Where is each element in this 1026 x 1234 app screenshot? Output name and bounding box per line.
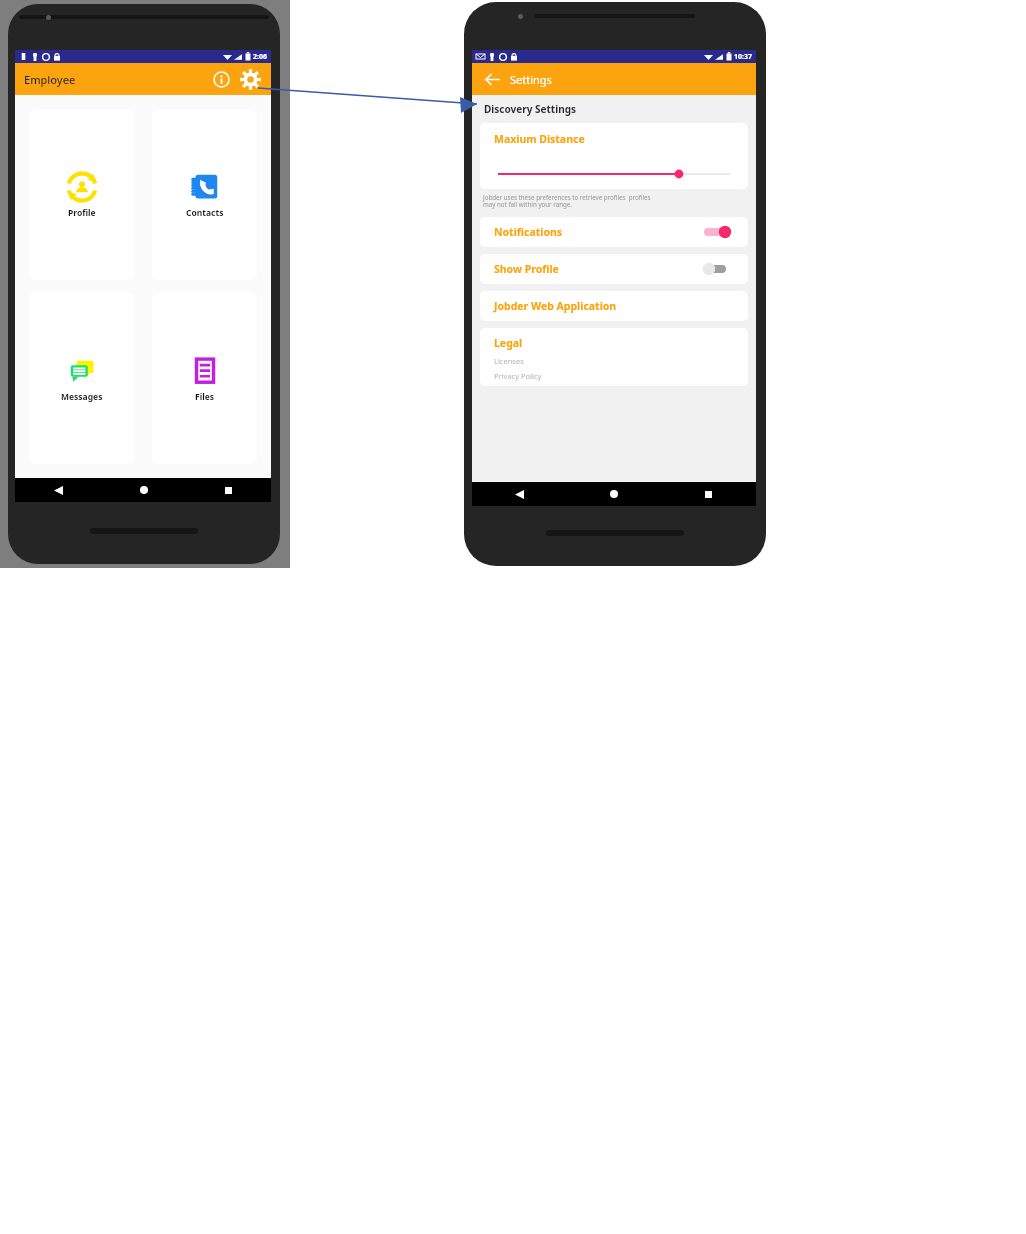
button[interactable]: Home bbox=[101, 478, 186, 502]
staticText: Files bbox=[195, 391, 215, 403]
button[interactable]: Jobder Web Application bbox=[480, 291, 748, 321]
staticText: Profile bbox=[68, 207, 96, 219]
staticText: Jobder uses these preferences to retriev… bbox=[483, 193, 651, 209]
button[interactable]: Recents bbox=[661, 482, 756, 506]
staticText: Settings bbox=[510, 72, 552, 87]
staticText: Notifications bbox=[494, 225, 563, 239]
staticText: 10:37 bbox=[734, 52, 752, 62]
staticText: Discovery Settings bbox=[484, 102, 576, 116]
staticText: Employee bbox=[24, 72, 76, 87]
button[interactable]: Toggle off bbox=[700, 261, 734, 277]
button[interactable]: Back bbox=[472, 482, 566, 506]
button[interactable]: Back bbox=[15, 478, 101, 502]
button[interactable]: Back bbox=[480, 67, 504, 91]
button[interactable]: Home bbox=[566, 482, 661, 506]
staticText: Jobder Web Application bbox=[494, 299, 617, 313]
staticText: Legal bbox=[494, 336, 523, 350]
button[interactable]: Toggle on bbox=[700, 224, 734, 240]
button[interactable]: Recents bbox=[186, 478, 271, 502]
button[interactable]: Info bbox=[209, 67, 233, 91]
staticText: Contacts bbox=[186, 207, 224, 219]
button[interactable]: Settings bbox=[237, 66, 263, 92]
button[interactable]: Contacts bbox=[152, 109, 257, 280]
button[interactable]: Notifications bbox=[480, 217, 748, 247]
button[interactable]: Files bbox=[152, 292, 257, 464]
button[interactable]: Show Profile bbox=[480, 254, 748, 284]
staticText: Maxium Distance bbox=[494, 132, 585, 146]
button[interactable]: Messages bbox=[29, 292, 134, 464]
staticText: Show Profile bbox=[494, 262, 559, 276]
button[interactable]: Profile bbox=[29, 109, 134, 280]
staticText: 2:06 bbox=[253, 52, 267, 62]
button[interactable]: Licenses bbox=[494, 356, 524, 366]
button[interactable]: Privacy Policy bbox=[494, 371, 542, 381]
staticText: Messages bbox=[61, 391, 103, 403]
